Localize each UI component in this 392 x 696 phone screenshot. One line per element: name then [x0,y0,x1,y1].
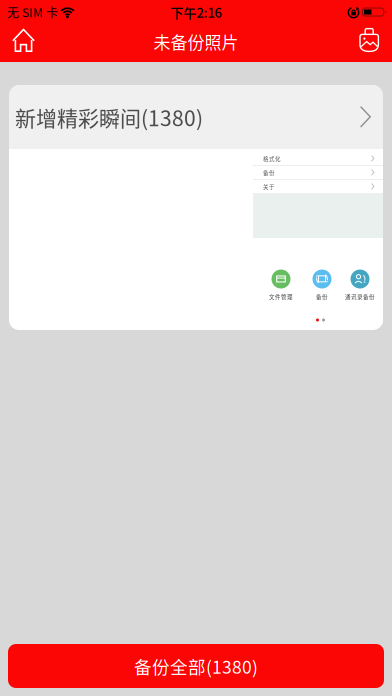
button[interactable]: 备份全部(1380) [8,644,384,688]
staticText: 通讯录备份 [345,292,375,300]
staticText: 文件管理 [269,292,293,300]
button[interactable]: 设备 [359,28,392,52]
staticText: 格式化 [263,154,281,162]
staticText: 未备份照片 [153,29,238,54]
staticText: 下午2:16 [170,3,221,21]
staticText: 新增精彩瞬间(1380) [15,102,203,132]
staticText: 无 SIM 卡 [7,3,58,21]
staticText: 备份 [316,292,328,300]
staticText: 备份全部(1380) [134,653,258,679]
button[interactable]: 主页 [0,28,35,52]
button[interactable]: 照片 [253,149,383,325]
staticText: 备份 [263,168,275,176]
button[interactable]: 新增精彩瞬间(1380) [9,85,383,149]
staticText: 关于 [263,182,275,190]
